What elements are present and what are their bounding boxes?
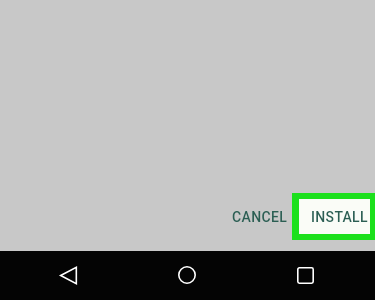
button[interactable]: Home [163,251,211,299]
button[interactable]: Back [44,251,92,299]
button[interactable]: INSTALL [292,193,375,240]
staticText: CANCEL [232,209,288,225]
button[interactable]: Recent apps [281,251,329,299]
staticText: INSTALL [311,209,368,225]
button[interactable]: CANCEL [226,201,294,233]
